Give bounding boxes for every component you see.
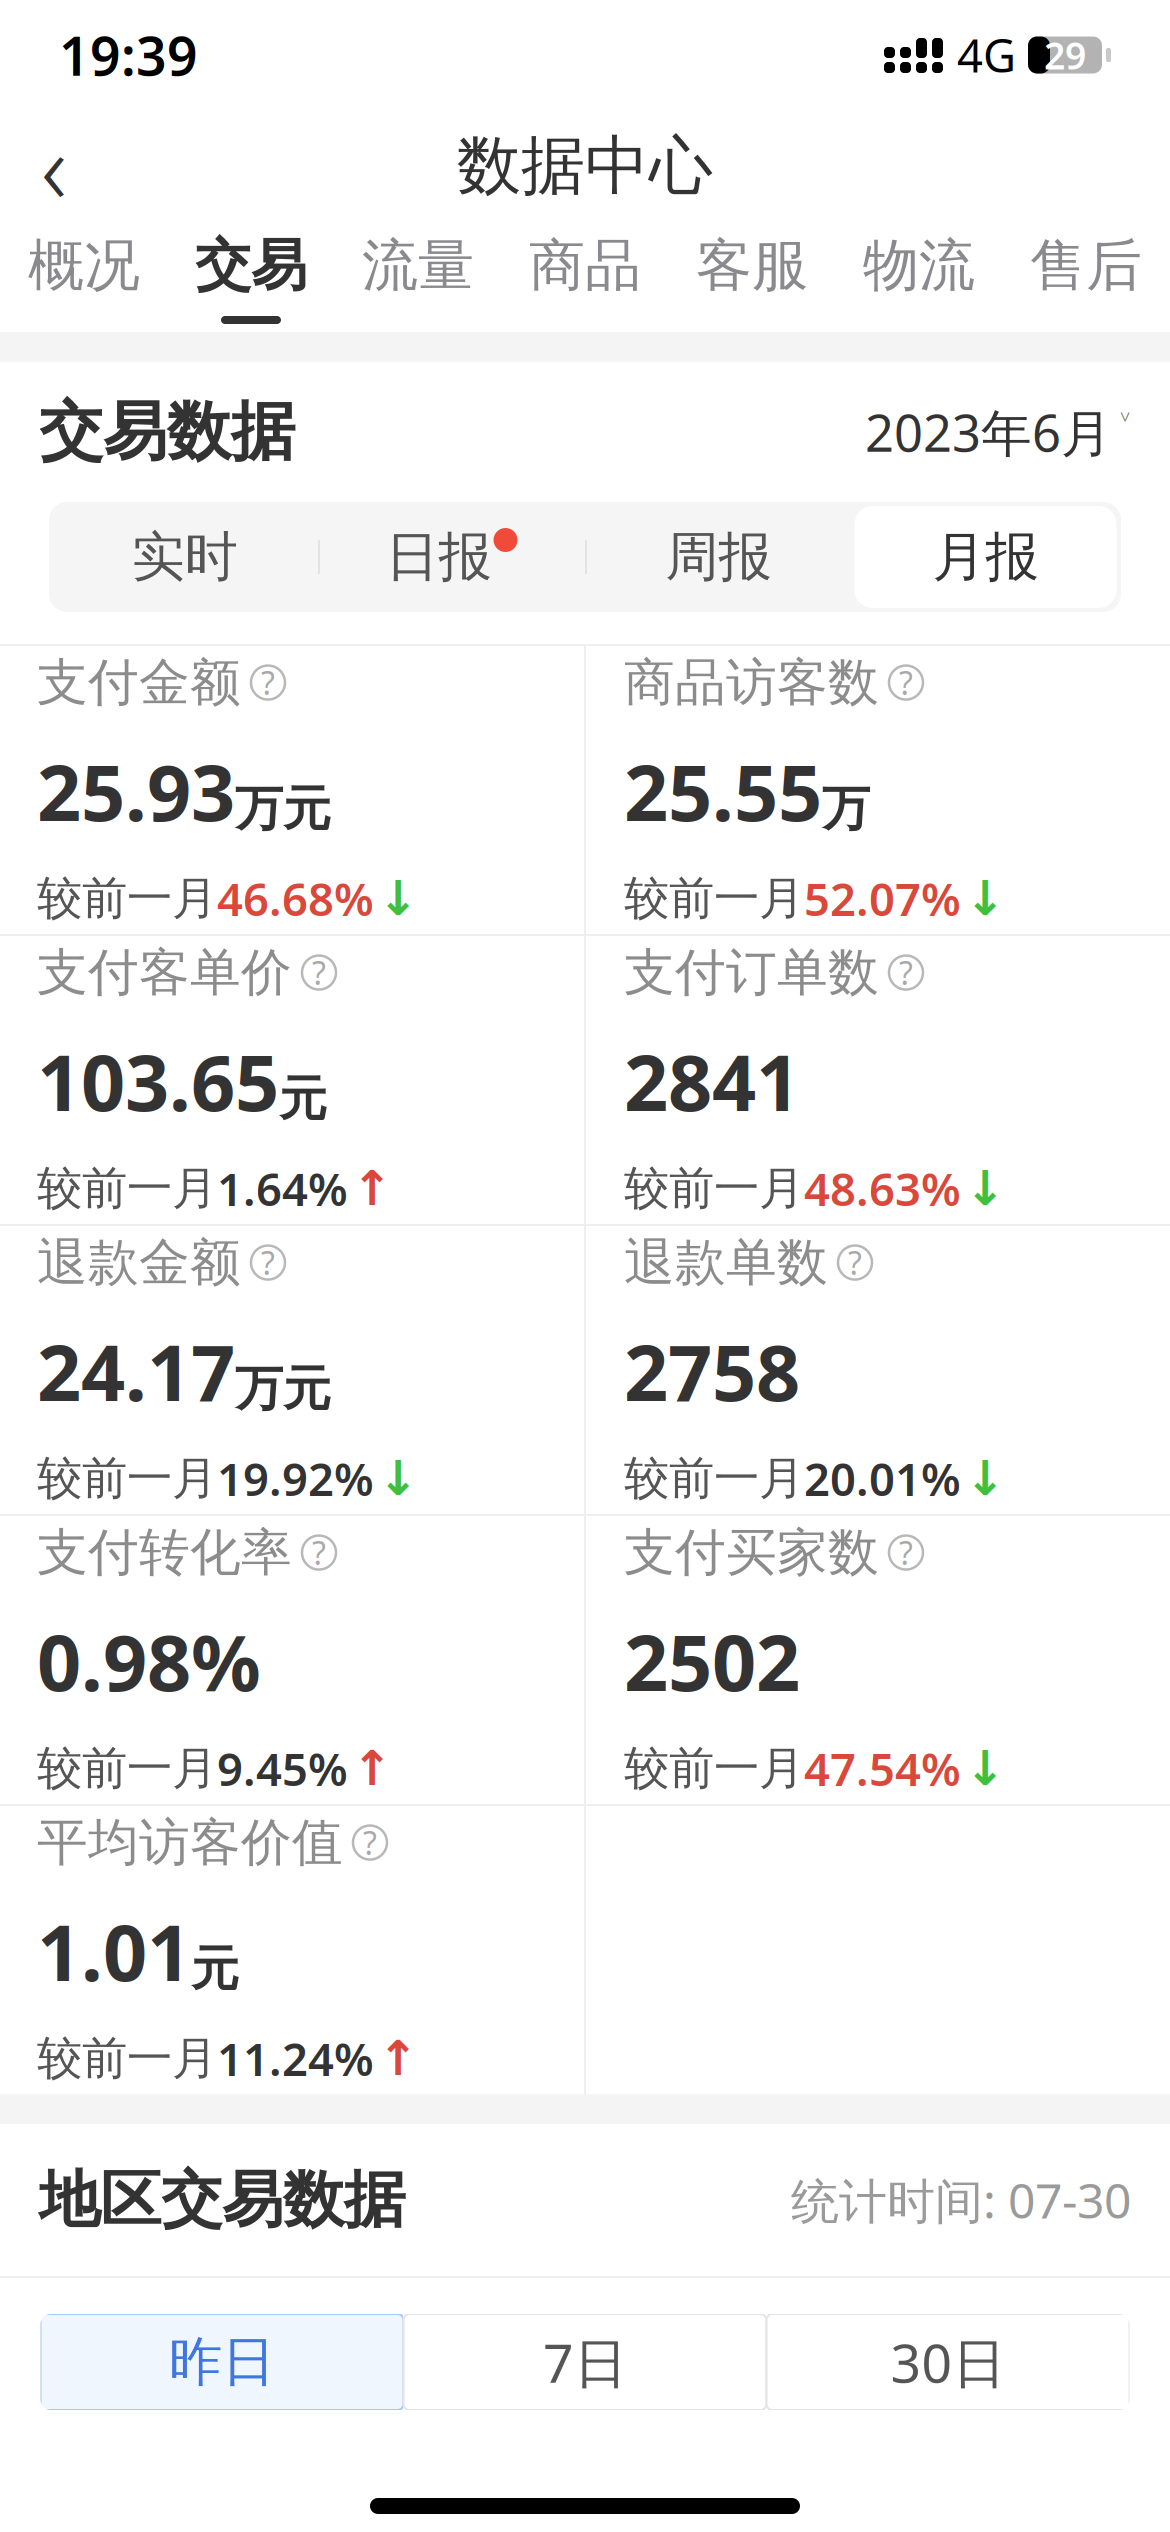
staticText: 商品 — [529, 231, 641, 300]
staticText: 实时 — [131, 524, 237, 590]
staticText: 7日 — [543, 2327, 627, 2397]
staticText: ? — [261, 661, 275, 704]
staticText: 万元 — [235, 779, 331, 838]
staticText: ↓ — [378, 871, 418, 926]
staticText: 月报 — [932, 524, 1038, 590]
staticText: 52.07% — [804, 868, 961, 929]
staticText: 2023年6月 — [865, 398, 1112, 466]
staticText: 1.01 — [37, 1900, 191, 2002]
staticText: 元 — [279, 1069, 327, 1128]
staticText: ‹ — [41, 100, 67, 231]
staticText: 流量 — [362, 231, 474, 300]
staticText: ? — [312, 1531, 326, 1574]
button[interactable]: 月报 — [852, 502, 1119, 612]
staticText: 2502 — [624, 1610, 800, 1712]
staticText: ? — [899, 661, 913, 704]
staticText: 支付订单数 — [624, 941, 879, 1004]
staticText: 11.24% — [217, 2028, 374, 2089]
staticText: 万元 — [235, 1359, 331, 1418]
button[interactable]: 2023年6月 — [865, 398, 1131, 466]
staticText: 支付转化率 — [37, 1521, 292, 1584]
staticText: 103.65 — [37, 1030, 279, 1132]
staticText: 较前一月 — [37, 1741, 217, 1796]
staticText: 元 — [191, 1939, 239, 1998]
button[interactable]: 客服 — [668, 222, 835, 332]
staticText: 交易 — [195, 231, 307, 300]
staticText: ↓ — [378, 1451, 418, 1506]
staticText: 较前一月 — [624, 871, 804, 926]
staticText: 46.68% — [217, 868, 374, 929]
staticText: ↓ — [965, 1161, 1005, 1216]
staticText: 周报 — [665, 524, 771, 590]
staticText: ↓ — [965, 1741, 1005, 1796]
button[interactable]: 概况 — [0, 222, 167, 332]
staticText: 较前一月 — [624, 1161, 804, 1216]
staticText: ? — [899, 951, 913, 994]
button[interactable]: 售后 — [1002, 222, 1169, 332]
staticText: 支付客单价 — [37, 941, 292, 1004]
staticText: ↓ — [965, 1451, 1005, 1506]
staticText: 20.01% — [804, 1448, 961, 1509]
staticText: 数据中心 — [457, 127, 713, 205]
staticText: 29 — [1044, 30, 1086, 80]
staticText: ↑ — [352, 1161, 392, 1216]
staticText: ↑ — [378, 2031, 418, 2086]
button[interactable]: 昨日 — [40, 2314, 403, 2410]
staticText: 退款金额 — [37, 1231, 241, 1294]
staticText: 较前一月 — [37, 2031, 217, 2086]
staticText: 较前一月 — [37, 1161, 217, 1216]
button[interactable]: 周报 — [585, 502, 852, 612]
staticText: 支付金额 — [37, 651, 241, 714]
staticText: 交易数据 — [39, 393, 295, 471]
button[interactable]: 实时 — [51, 502, 318, 612]
staticText: 退款单数 — [624, 1231, 828, 1294]
staticText: 2758 — [624, 1320, 800, 1422]
staticText: 商品访客数 — [624, 651, 879, 714]
staticText: ? — [261, 1241, 275, 1284]
staticText: 物流 — [863, 231, 975, 300]
staticText: 售后 — [1030, 231, 1142, 300]
staticText: ↑ — [352, 1741, 392, 1796]
staticText: 24.17 — [37, 1320, 235, 1422]
staticText: ? — [363, 1821, 377, 1864]
staticText: ↓ — [965, 871, 1005, 926]
staticText: 万 — [822, 779, 870, 838]
staticText: 47.54% — [804, 1738, 961, 1799]
button[interactable]: 物流 — [835, 222, 1002, 332]
staticText: 2841 — [624, 1030, 800, 1132]
staticText: 较前一月 — [37, 1451, 217, 1506]
staticText: 客服 — [696, 231, 808, 300]
staticText: 1.64% — [217, 1158, 348, 1219]
button[interactable]: 交易 — [167, 222, 334, 332]
staticText: 19:39 — [59, 20, 198, 90]
staticText: ˅ — [1120, 403, 1131, 453]
staticText: 日报 — [385, 524, 491, 590]
staticText: 较前一月 — [624, 1451, 804, 1506]
button[interactable]: 30日 — [766, 2314, 1129, 2410]
staticText: ? — [899, 1531, 913, 1574]
staticText: 支付买家数 — [624, 1521, 879, 1584]
staticText: 30日 — [890, 2327, 1005, 2397]
button[interactable]: 商品 — [501, 222, 668, 332]
staticText: 9.45% — [217, 1738, 348, 1799]
staticText: 概况 — [28, 231, 140, 300]
staticText: 0.98% — [37, 1610, 261, 1712]
staticText: 4G — [957, 25, 1016, 85]
staticText: 19.92% — [217, 1448, 374, 1509]
staticText: 昨日 — [169, 2329, 275, 2395]
staticText: 地区交易数据 — [39, 2162, 405, 2238]
staticText: ? — [848, 1241, 862, 1284]
staticText: 统计时间: 07-30 — [791, 2168, 1131, 2232]
staticText: 较前一月 — [624, 1741, 804, 1796]
staticText: 25.55 — [624, 740, 822, 842]
staticText: 25.93 — [37, 740, 235, 842]
staticText: 48.63% — [804, 1158, 961, 1219]
button[interactable]: 7日 — [403, 2314, 766, 2410]
staticText: 平均访客价值 — [37, 1811, 343, 1874]
button[interactable]: Back — [0, 116, 109, 216]
button[interactable]: 流量 — [334, 222, 501, 332]
staticText: ? — [312, 951, 326, 994]
staticText: 较前一月 — [37, 871, 217, 926]
button[interactable]: 日报 — [318, 502, 585, 612]
